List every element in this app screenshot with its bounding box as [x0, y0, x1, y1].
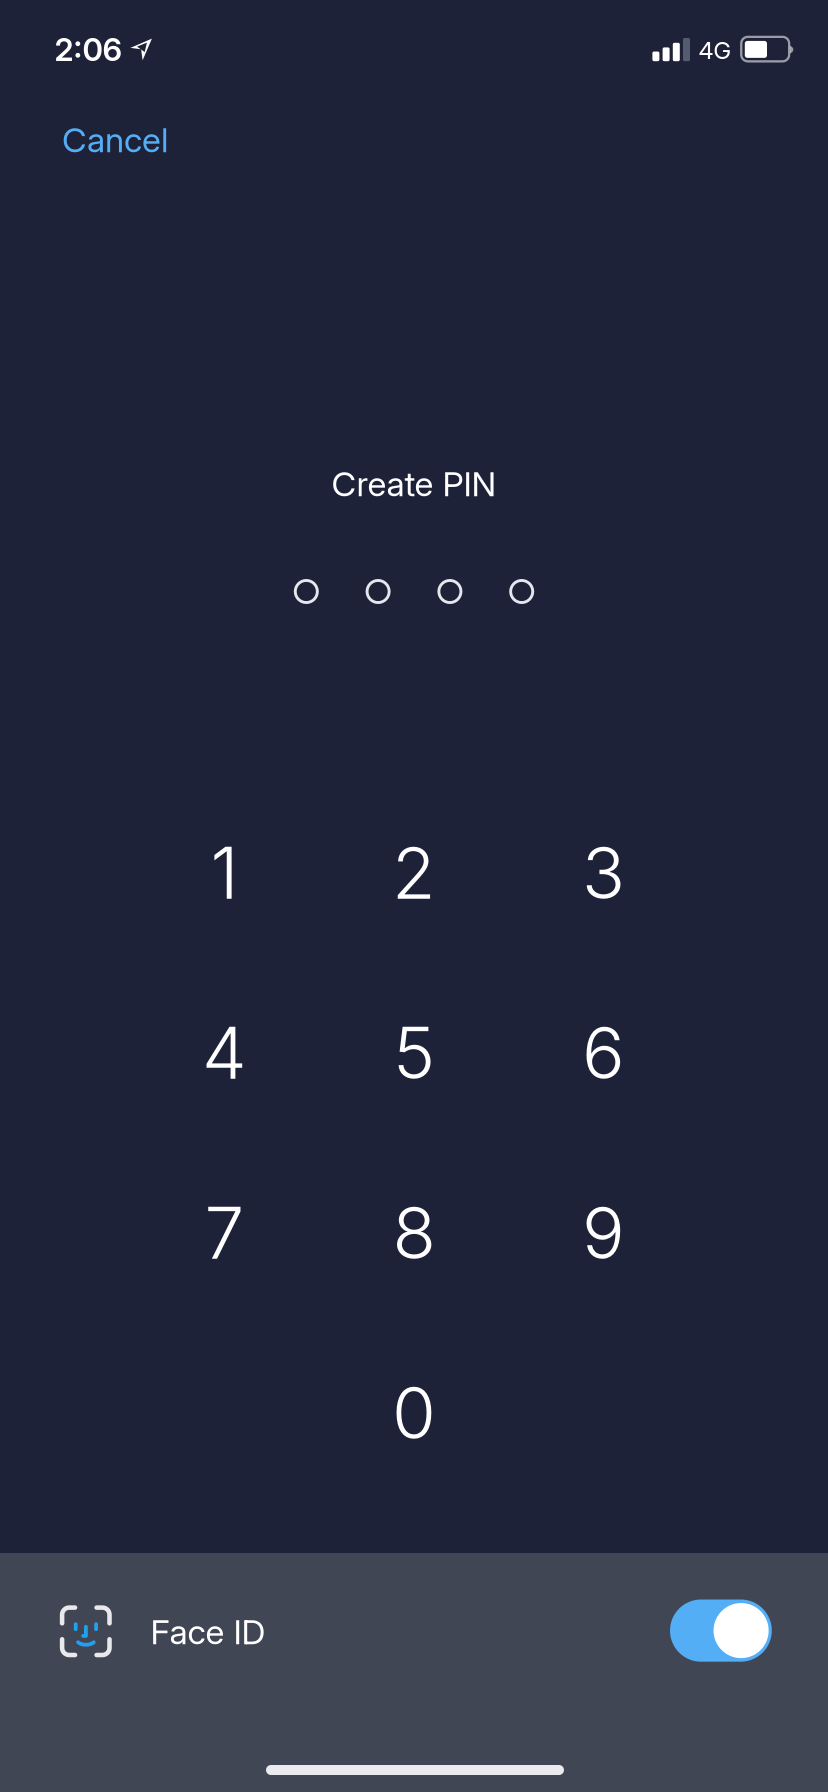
button[interactable]: 4 — [130, 963, 319, 1143]
button[interactable]: Cancel — [62, 108, 262, 172]
button[interactable]: 0 — [319, 1323, 509, 1503]
button[interactable]: 2 — [319, 783, 509, 963]
button[interactable]: 7 — [130, 1143, 319, 1323]
staticText: 6 — [582, 1010, 625, 1096]
button[interactable]: Face ID — [670, 1599, 772, 1662]
staticText: 5 — [393, 1010, 435, 1096]
button[interactable]: 6 — [509, 963, 698, 1143]
staticText: 9 — [582, 1190, 625, 1276]
staticText: Create PIN — [331, 463, 496, 504]
staticText: 0 — [392, 1370, 436, 1456]
staticText: 4 — [202, 1010, 247, 1096]
button[interactable]: 1 — [130, 783, 319, 963]
staticText: 1 — [210, 830, 238, 916]
button[interactable]: 8 — [319, 1143, 509, 1323]
staticText: Face ID — [150, 1611, 265, 1652]
staticText: Cancel — [62, 119, 168, 160]
staticText: 7 — [204, 1190, 244, 1276]
staticText: 8 — [392, 1190, 435, 1276]
button[interactable]: 9 — [509, 1143, 698, 1323]
button[interactable]: 3 — [509, 783, 698, 963]
staticText: 2 — [392, 830, 436, 916]
staticText: 4G — [698, 36, 731, 65]
staticText: 3 — [582, 830, 625, 916]
staticText: 2:06 — [54, 30, 122, 68]
button[interactable]: 5 — [319, 963, 509, 1143]
